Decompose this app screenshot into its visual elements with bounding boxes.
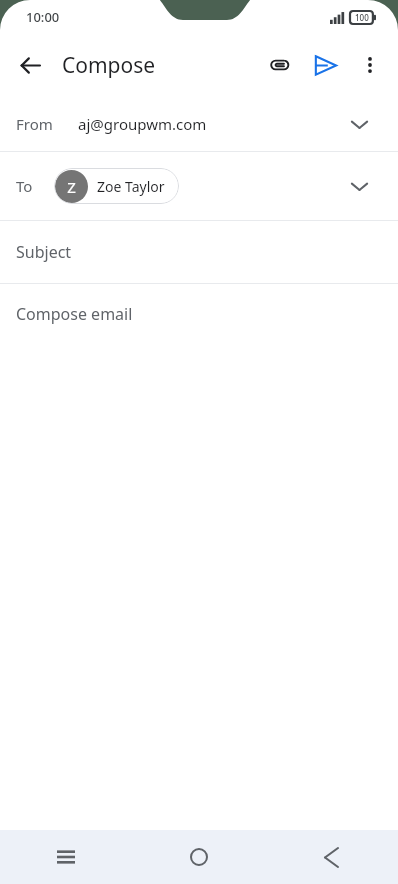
button[interactable]: Back [8, 43, 52, 87]
button[interactable]: Z [54, 168, 179, 204]
staticText: Compose email [16, 303, 133, 325]
staticText: 10:00 [26, 8, 60, 26]
button[interactable]: Expand [342, 169, 376, 203]
staticText: Subject [16, 241, 72, 263]
button[interactable]: More options [348, 43, 392, 87]
button[interactable]: From [0, 96, 398, 151]
staticText: Compose [62, 51, 156, 80]
button[interactable]: To [0, 152, 398, 220]
button[interactable]: Recent apps [0, 830, 132, 884]
button[interactable]: Send [302, 42, 348, 88]
staticText: aj@groupwm.com [78, 114, 207, 134]
button[interactable]: Compose email [0, 284, 398, 344]
button[interactable]: Back [265, 830, 398, 884]
staticText: From [16, 114, 78, 134]
staticText: To [16, 176, 54, 196]
button[interactable]: Home [132, 830, 265, 884]
button[interactable]: Attach file [258, 43, 302, 87]
button[interactable]: Expand [342, 107, 376, 141]
button[interactable]: Subject [0, 221, 398, 283]
staticText: Z [67, 177, 76, 197]
staticText: Zoe Taylor [97, 177, 165, 196]
staticText: 100 [355, 12, 369, 23]
